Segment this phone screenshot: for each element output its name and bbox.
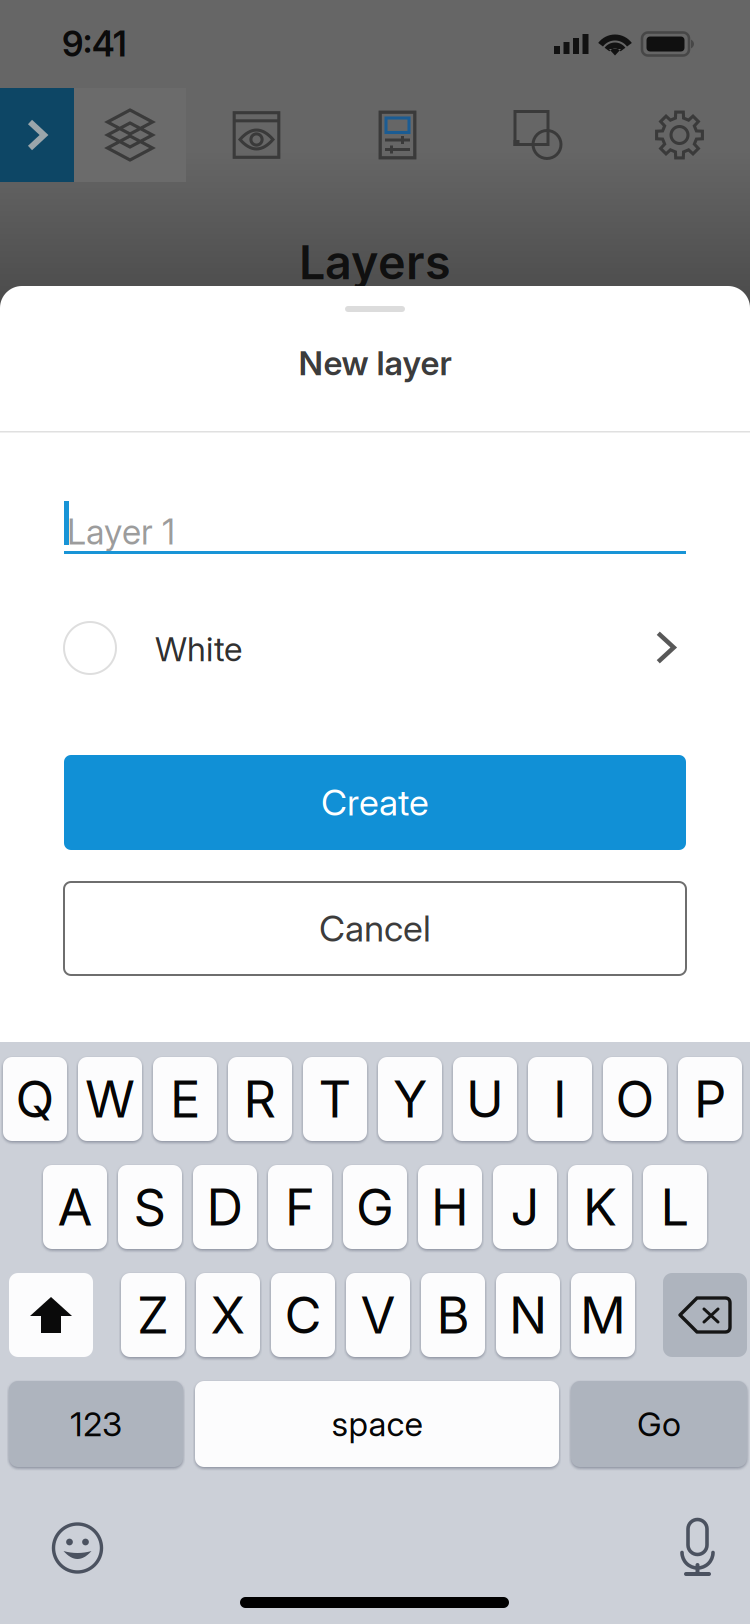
staticText: Z <box>137 1284 169 1346</box>
staticText: V <box>360 1284 395 1346</box>
button[interactable]: N <box>496 1273 560 1357</box>
staticText: T <box>318 1068 351 1130</box>
button[interactable]: Create <box>64 755 686 850</box>
staticText: Go <box>637 1404 681 1444</box>
button[interactable]: Preview <box>186 88 327 182</box>
staticText: 123 <box>70 1404 122 1444</box>
staticText: X <box>210 1284 245 1346</box>
staticText: Layers <box>299 234 451 290</box>
button[interactable]: Shift <box>9 1273 93 1357</box>
button[interactable]: E <box>153 1057 217 1141</box>
button[interactable]: O <box>603 1057 667 1141</box>
staticText: F <box>285 1176 315 1238</box>
staticText: J <box>510 1176 539 1238</box>
button[interactable]: G <box>343 1165 407 1249</box>
button[interactable]: S <box>118 1165 182 1249</box>
button[interactable]: Delete <box>663 1273 747 1357</box>
button[interactable]: A <box>43 1165 107 1249</box>
button[interactable]: Z <box>121 1273 185 1357</box>
button[interactable]: 123 <box>9 1381 183 1467</box>
button[interactable]: P <box>678 1057 742 1141</box>
button[interactable]: U <box>453 1057 517 1141</box>
staticText: M <box>580 1284 626 1346</box>
button[interactable]: I <box>528 1057 592 1141</box>
staticText: A <box>57 1176 92 1238</box>
staticText: Q <box>15 1068 54 1130</box>
staticText: G <box>356 1176 394 1238</box>
button[interactable]: Cancel <box>64 882 686 975</box>
staticText: R <box>243 1068 276 1130</box>
staticText: I <box>553 1068 567 1130</box>
staticText: P <box>694 1068 726 1130</box>
staticText: space <box>331 1404 422 1444</box>
button[interactable]: K <box>568 1165 632 1249</box>
button[interactable]: B <box>421 1273 485 1357</box>
button[interactable]: M <box>571 1273 635 1357</box>
button[interactable]: Adjust <box>327 88 468 182</box>
staticText: Layer 1 <box>67 511 175 553</box>
button[interactable]: H <box>418 1165 482 1249</box>
staticText: D <box>206 1176 243 1238</box>
staticText: Create <box>321 781 429 824</box>
staticText: White <box>155 629 242 669</box>
button[interactable]: D <box>193 1165 257 1249</box>
button[interactable]: Y <box>378 1057 442 1141</box>
button[interactable]: Expand sidebar <box>0 88 74 182</box>
button[interactable]: R <box>228 1057 292 1141</box>
staticText: U <box>466 1068 504 1130</box>
button[interactable]: T <box>303 1057 367 1141</box>
button[interactable]: Dictate <box>645 1516 749 1580</box>
button[interactable]: L <box>643 1165 707 1249</box>
button[interactable]: J <box>493 1165 557 1249</box>
staticText: E <box>170 1068 200 1130</box>
button[interactable]: space <box>195 1381 559 1467</box>
staticText: New layer <box>298 343 451 383</box>
staticText: H <box>431 1176 469 1238</box>
button[interactable]: White <box>64 616 686 680</box>
button[interactable]: Layers <box>74 88 186 182</box>
staticText: B <box>436 1284 469 1346</box>
staticText: W <box>85 1068 135 1130</box>
staticText: K <box>583 1176 617 1238</box>
staticText: Y <box>393 1068 427 1130</box>
staticText: O <box>615 1068 654 1130</box>
button[interactable]: V <box>346 1273 410 1357</box>
staticText: N <box>509 1284 547 1346</box>
button[interactable]: C <box>271 1273 335 1357</box>
button[interactable]: Shapes <box>468 88 609 182</box>
button[interactable]: X <box>196 1273 260 1357</box>
button[interactable]: Emoji keyboard <box>25 1516 129 1580</box>
button[interactable]: Settings <box>609 88 750 182</box>
staticText: S <box>133 1176 166 1238</box>
button[interactable]: Q <box>3 1057 67 1141</box>
staticText: 9:41 <box>62 23 127 65</box>
button[interactable]: W <box>78 1057 142 1141</box>
button[interactable]: F <box>268 1165 332 1249</box>
staticText: L <box>660 1176 689 1238</box>
button[interactable]: Go <box>571 1381 747 1467</box>
staticText: Cancel <box>319 907 431 950</box>
staticText: C <box>284 1284 321 1346</box>
